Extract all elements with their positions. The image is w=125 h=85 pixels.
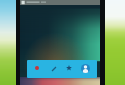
button[interactable]: [20, 0, 100, 5]
button[interactable]: Edit: [51, 66, 57, 72]
button[interactable]: Record: [27, 60, 97, 78]
button[interactable]: Record: [35, 66, 39, 70]
button[interactable]: Account: [81, 64, 90, 73]
button[interactable]: Favorite: [66, 65, 72, 71]
